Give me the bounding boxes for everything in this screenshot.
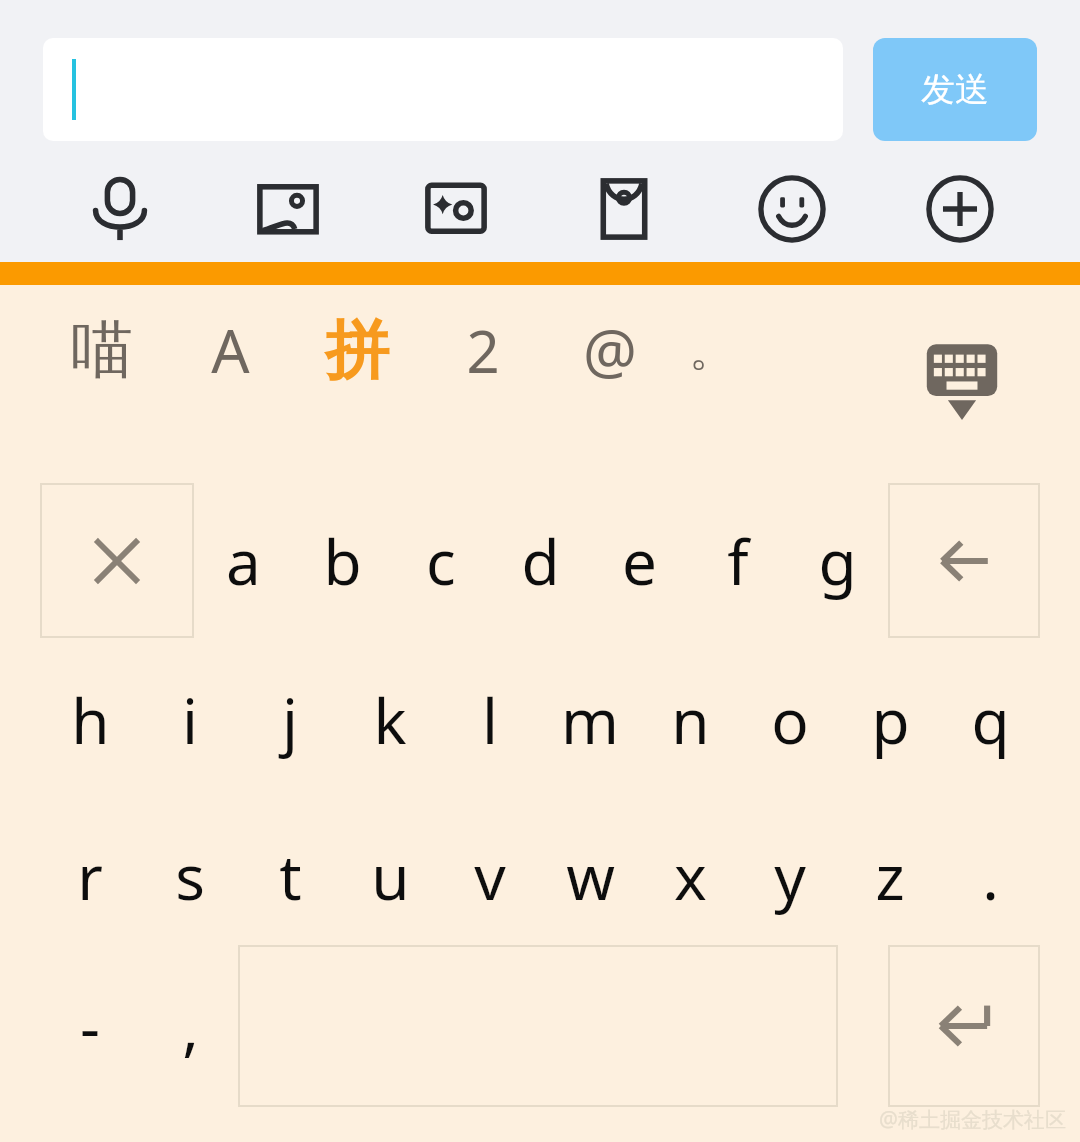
button[interactable]: f	[688, 483, 788, 638]
button[interactable]: 拼	[307, 295, 407, 405]
button[interactable]: o	[740, 650, 840, 790]
button[interactable]: d	[490, 483, 590, 638]
staticText: @稀土掘金技术社区	[879, 1105, 1066, 1134]
button[interactable]: Hide keyboard	[918, 340, 1006, 426]
staticText: n	[671, 678, 710, 762]
button[interactable]: x	[640, 806, 740, 946]
staticText: z	[875, 834, 905, 918]
staticText: u	[371, 834, 410, 918]
button[interactable]: w	[540, 806, 640, 946]
button[interactable]: g	[787, 483, 887, 638]
button[interactable]: a	[193, 483, 293, 638]
button[interactable]: Emoji	[744, 161, 840, 257]
button[interactable]: j	[240, 650, 340, 790]
button[interactable]: y	[740, 806, 840, 946]
button[interactable]: Voice input	[72, 161, 168, 257]
button[interactable]: Backspace	[888, 483, 1040, 638]
button[interactable]: e	[589, 483, 689, 638]
staticText: e	[622, 519, 657, 603]
button[interactable]: 。	[662, 295, 762, 405]
staticText: y	[774, 834, 806, 918]
staticText: 发送	[921, 68, 989, 111]
button[interactable]: i	[140, 650, 240, 790]
staticText: p	[871, 678, 910, 762]
button[interactable]: r	[40, 806, 140, 946]
button[interactable]: h	[40, 650, 140, 790]
staticText: 拼	[325, 310, 389, 391]
button[interactable]: Effects	[408, 161, 504, 257]
button[interactable]: n	[640, 650, 740, 790]
button[interactable]: @	[560, 295, 660, 405]
button[interactable]: t	[240, 806, 340, 946]
button[interactable]: Enter	[888, 945, 1040, 1107]
button[interactable]: 喵	[52, 295, 152, 405]
staticText: k	[373, 678, 407, 762]
button[interactable]: z	[840, 806, 940, 946]
staticText: h	[71, 678, 110, 762]
button[interactable]: l	[440, 650, 540, 790]
staticText: l	[482, 678, 498, 762]
button[interactable]: c	[391, 483, 491, 638]
button[interactable]: -	[40, 945, 140, 1107]
staticText: -	[80, 984, 100, 1068]
staticText: t	[279, 834, 302, 918]
button[interactable]: q	[940, 650, 1040, 790]
button[interactable]: 2	[433, 295, 533, 405]
staticText: o	[771, 678, 809, 762]
button[interactable]	[43, 38, 843, 141]
button[interactable]: v	[440, 806, 540, 946]
button[interactable]: u	[340, 806, 440, 946]
staticText: g	[818, 519, 857, 603]
staticText: 2	[466, 311, 500, 390]
button[interactable]: b	[292, 483, 392, 638]
staticText: c	[426, 519, 456, 603]
staticText: .	[982, 834, 999, 918]
staticText: m	[561, 678, 619, 762]
button[interactable]: p	[840, 650, 940, 790]
staticText: j	[282, 678, 298, 762]
button[interactable]: Space	[238, 945, 838, 1107]
staticText: s	[175, 834, 205, 918]
staticText: @	[583, 309, 637, 391]
button[interactable]: More	[912, 161, 1008, 257]
staticText: x	[674, 834, 707, 918]
button[interactable]: Clear	[40, 483, 194, 638]
staticText: 喵	[71, 311, 133, 389]
staticText: w	[566, 834, 615, 918]
staticText: r	[77, 834, 103, 918]
button[interactable]: A	[180, 295, 280, 405]
staticText: i	[182, 678, 198, 762]
staticText: v	[474, 834, 506, 918]
button[interactable]: m	[540, 650, 640, 790]
staticText: A	[211, 309, 250, 391]
button[interactable]: s	[140, 806, 240, 946]
staticText: b	[323, 519, 362, 603]
button[interactable]: k	[340, 650, 440, 790]
staticText: ,	[182, 984, 199, 1068]
staticText: a	[226, 519, 261, 603]
button[interactable]: ,	[140, 945, 240, 1107]
staticText: 。	[689, 321, 735, 379]
button[interactable]: 发送	[873, 38, 1037, 141]
button[interactable]: .	[940, 806, 1040, 946]
staticText: d	[521, 519, 560, 603]
button[interactable]: Photos	[240, 161, 336, 257]
staticText: q	[971, 678, 1010, 762]
button[interactable]: Red packet	[576, 161, 672, 257]
staticText: f	[727, 519, 749, 603]
